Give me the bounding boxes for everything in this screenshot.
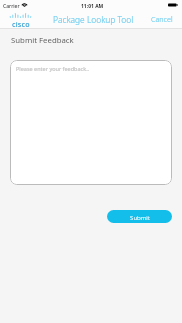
other: Battery full: [168, 3, 178, 7]
button[interactable]: Submit: [107, 210, 172, 223]
staticText: Cancel: [151, 14, 173, 24]
staticText: Carrier: [3, 3, 20, 10]
staticText: Package Lookup Tool: [53, 14, 134, 25]
button[interactable]: Cisco: [9, 13, 32, 29]
button[interactable]: Cancel: [151, 14, 173, 24]
button[interactable]: Please enter your feedback..: [10, 60, 172, 185]
staticText: Please enter your feedback..: [16, 65, 90, 72]
other: Wi-Fi signal: [21, 2, 28, 7]
staticText: 11:01 AM: [81, 3, 104, 10]
staticText: Submit Feedback: [11, 35, 74, 46]
staticText: cisco: [12, 19, 30, 29]
staticText: Submit: [130, 213, 150, 221]
